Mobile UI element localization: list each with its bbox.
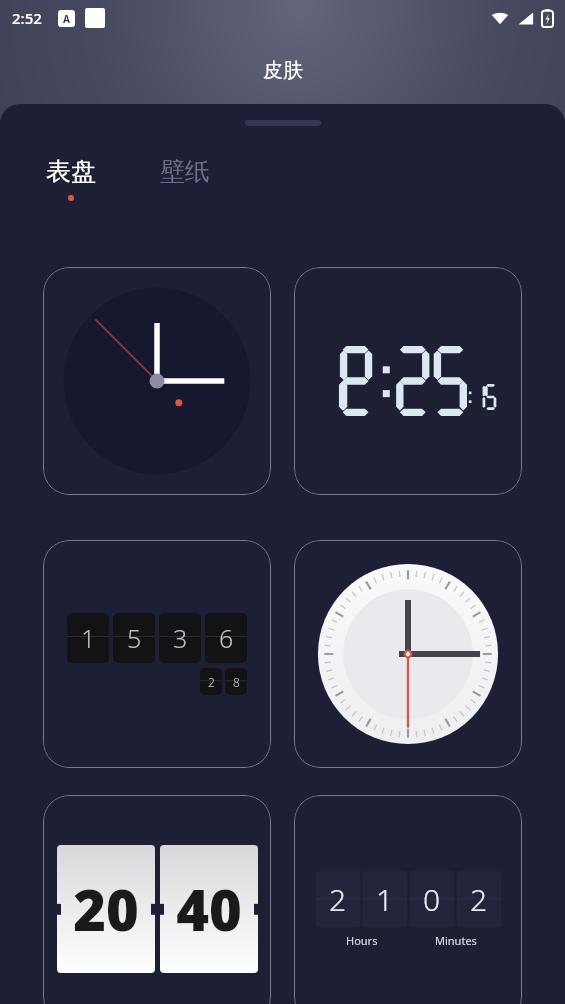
staticText: 表盘 bbox=[46, 156, 96, 187]
staticText: 0 bbox=[423, 879, 441, 920]
staticText: 2 bbox=[329, 879, 347, 920]
staticText: 2:52 bbox=[12, 8, 42, 28]
button[interactable]: 表盘 bbox=[42, 154, 100, 203]
staticText: Hours bbox=[346, 933, 378, 948]
staticText: 2 bbox=[470, 879, 488, 920]
staticText: 3 bbox=[173, 621, 188, 655]
staticText: 1 bbox=[376, 879, 394, 920]
button[interactable]: Watch face preview bbox=[294, 540, 522, 768]
staticText: 2 bbox=[208, 674, 215, 690]
staticText: 40 bbox=[176, 871, 242, 947]
staticText: Minutes bbox=[435, 933, 477, 948]
staticText: 20 bbox=[73, 871, 139, 947]
staticText: 1 bbox=[81, 621, 96, 655]
button[interactable]: 壁纸 bbox=[156, 154, 214, 189]
staticText: 壁纸 bbox=[160, 156, 210, 187]
staticText: 5 bbox=[127, 621, 142, 655]
staticText: 6 bbox=[219, 621, 234, 655]
button[interactable]: Watch face preview bbox=[294, 267, 522, 495]
button[interactable]: Watch face preview bbox=[43, 540, 271, 768]
button[interactable]: Watch face preview bbox=[294, 795, 522, 1004]
staticText: 皮肤 bbox=[263, 58, 303, 83]
button[interactable]: Watch face preview bbox=[43, 795, 271, 1004]
staticText: 8 bbox=[233, 674, 240, 690]
staticText: A bbox=[63, 12, 70, 26]
button[interactable]: Watch face preview bbox=[43, 267, 271, 495]
